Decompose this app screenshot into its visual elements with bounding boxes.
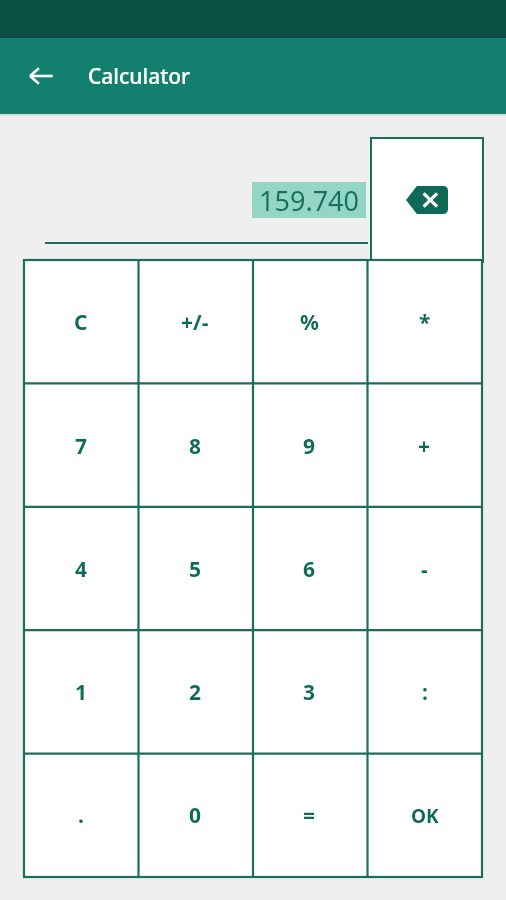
staticText: 6 (303, 555, 316, 584)
button[interactable]: 8 (138, 384, 252, 508)
staticText: % (300, 308, 319, 337)
button[interactable]: 4 (24, 508, 138, 631)
staticText: * (419, 308, 431, 337)
button[interactable]: + (367, 384, 482, 508)
button[interactable]: +/- (138, 260, 252, 384)
button[interactable]: 0 (138, 754, 252, 877)
staticText: Calculator (88, 62, 190, 91)
staticText: 0 (189, 801, 202, 830)
button[interactable]: : (367, 631, 482, 754)
staticText: : (422, 678, 428, 707)
button[interactable]: 6 (252, 508, 367, 631)
button[interactable]: . (24, 754, 138, 877)
staticText: OK (411, 803, 439, 829)
button[interactable]: = (252, 754, 367, 877)
button[interactable]: OK (367, 754, 482, 877)
staticText: . (78, 801, 84, 830)
button[interactable]: 7 (24, 384, 138, 508)
staticText: 4 (75, 555, 88, 584)
staticText: 5 (189, 555, 202, 584)
staticText: +/- (181, 308, 209, 337)
staticText: - (421, 555, 428, 584)
button[interactable]: 5 (138, 508, 252, 631)
staticText: 9 (303, 432, 316, 461)
staticText: + (418, 432, 431, 461)
button[interactable]: * (367, 260, 482, 384)
button[interactable]: % (252, 260, 367, 384)
staticText: 8 (189, 432, 202, 461)
button[interactable]: Back (14, 49, 68, 103)
button[interactable]: C (24, 260, 138, 384)
button[interactable]: 1 (24, 631, 138, 754)
staticText: 7 (75, 432, 88, 461)
button[interactable]: 2 (138, 631, 252, 754)
staticText: = (303, 801, 316, 830)
staticText: 3 (303, 678, 316, 707)
staticText: 2 (189, 678, 202, 707)
button[interactable]: 3 (252, 631, 367, 754)
button[interactable]: 9 (252, 384, 367, 508)
staticText: 159.740 (259, 182, 359, 218)
staticText: C (74, 308, 88, 337)
button[interactable]: - (367, 508, 482, 631)
button[interactable]: Backspace (371, 138, 483, 262)
staticText: 1 (75, 678, 88, 707)
